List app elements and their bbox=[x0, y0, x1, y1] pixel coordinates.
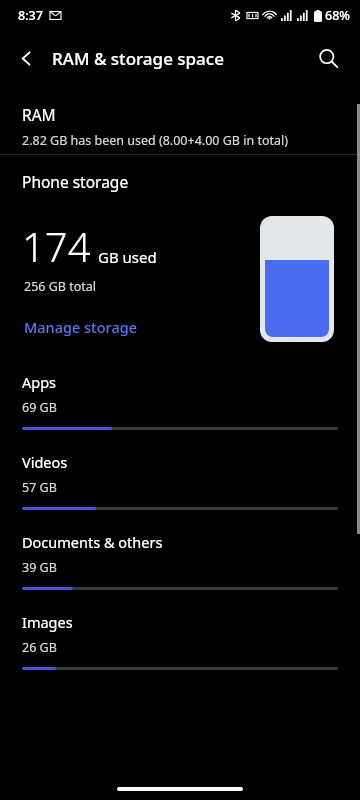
button[interactable]: RAM bbox=[0, 100, 360, 153]
staticText: GB used bbox=[98, 247, 157, 267]
button[interactable]: Back bbox=[8, 42, 45, 75]
staticText: Videos bbox=[22, 452, 68, 472]
staticText: Documents & others bbox=[22, 532, 163, 552]
button[interactable]: Search bbox=[306, 36, 350, 80]
staticText: Phone storage bbox=[22, 171, 129, 192]
button[interactable]: Videos bbox=[0, 452, 360, 510]
staticText: 2.82 GB has been used (8.00+4.00 GB in t… bbox=[22, 132, 288, 149]
staticText: Apps bbox=[22, 372, 57, 392]
button[interactable]: Manage storage bbox=[22, 315, 141, 339]
staticText: 8:37 bbox=[18, 7, 43, 24]
staticText: 26 GB bbox=[22, 639, 57, 656]
staticText: 256 GB total bbox=[24, 278, 97, 295]
staticText: Manage storage bbox=[24, 317, 137, 337]
staticText: 68% bbox=[325, 7, 350, 24]
staticText: 57 GB bbox=[22, 479, 57, 496]
staticText: Images bbox=[22, 612, 73, 632]
button[interactable]: Documents & others bbox=[0, 532, 360, 590]
staticText: RAM bbox=[22, 104, 56, 125]
staticText: 174 bbox=[22, 219, 91, 273]
staticText: 39 GB bbox=[22, 559, 57, 576]
staticText: RAM & storage space bbox=[52, 47, 224, 70]
button[interactable]: Images bbox=[0, 612, 360, 670]
button[interactable]: Apps bbox=[0, 372, 360, 430]
staticText: 69 GB bbox=[22, 399, 57, 416]
